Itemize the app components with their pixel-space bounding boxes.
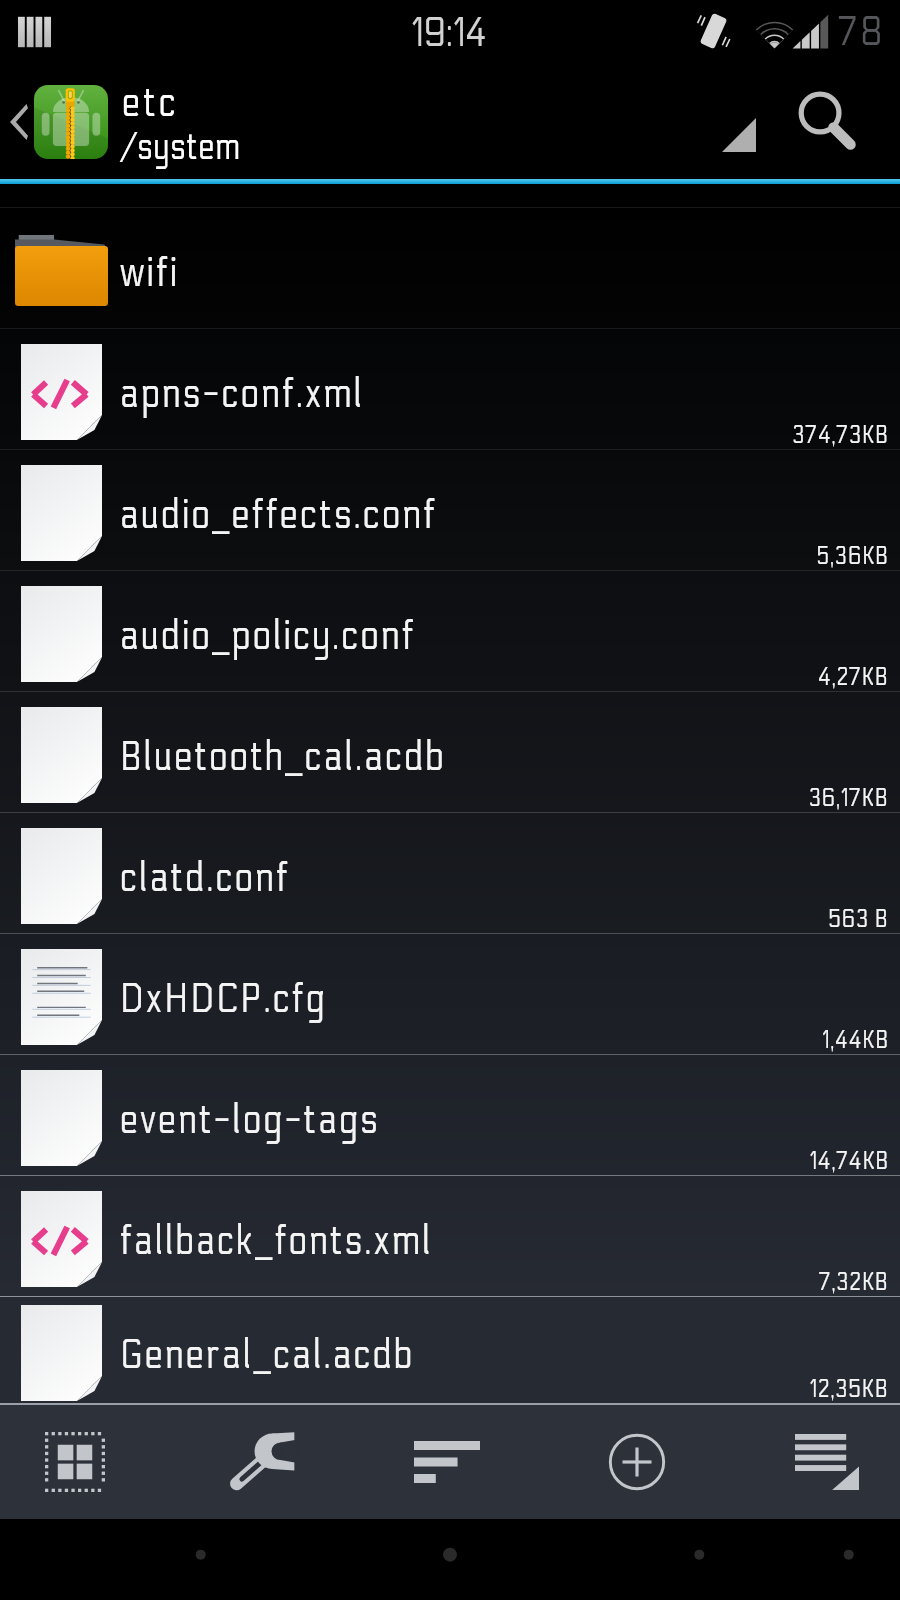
staticText: clatd.conf — [120, 853, 290, 903]
button[interactable]: New — [547, 1405, 727, 1519]
staticText: 5,36KB — [816, 541, 889, 571]
staticText: etc — [122, 78, 180, 128]
staticText: Bluetooth_cal.acdb — [120, 732, 446, 782]
button[interactable]: Sort — [357, 1405, 537, 1519]
staticText: 563 B — [828, 904, 889, 934]
staticText: 78 — [838, 7, 885, 57]
button[interactable]: audio_effects.conf — [0, 449, 900, 570]
button[interactable]: More — [737, 1405, 900, 1519]
button[interactable]: audio_policy.conf — [0, 570, 900, 691]
staticText: wifi — [120, 248, 180, 298]
button[interactable]: wifi — [0, 207, 900, 328]
staticText: /system — [121, 125, 241, 169]
staticText: 36,17KB — [809, 783, 889, 813]
staticText: event-log-tags — [120, 1095, 380, 1145]
staticText: 4,27KB — [818, 662, 889, 692]
staticText: audio_policy.conf — [120, 611, 416, 661]
button[interactable]: DxHDCP.cfg — [0, 933, 900, 1054]
button[interactable]: clatd.conf — [0, 812, 900, 933]
button[interactable]: event-log-tags — [0, 1054, 900, 1175]
staticText: fallback_fonts.xml — [120, 1216, 433, 1266]
staticText: audio_effects.conf — [120, 490, 437, 540]
staticText: 1,44KB — [822, 1025, 889, 1055]
button[interactable]: Tools — [172, 1405, 352, 1519]
button[interactable]: fallback_fonts.xml — [0, 1175, 900, 1296]
button[interactable]: Back — [0, 63, 33, 179]
staticText: 12,35KB — [809, 1374, 889, 1403]
staticText: apns-conf.xml — [120, 369, 365, 419]
staticText: 14,74KB — [809, 1146, 889, 1176]
button[interactable]: Search — [780, 63, 900, 179]
staticText: DxHDCP.cfg — [120, 974, 327, 1024]
staticText: General_cal.acdb — [120, 1330, 415, 1380]
button[interactable]: Select all — [0, 1405, 165, 1519]
button[interactable]: General_cal.acdb — [0, 1296, 900, 1403]
staticText: 374,73KB — [792, 420, 889, 450]
staticText: 7,32KB — [819, 1267, 889, 1297]
staticText: 19:14 — [411, 8, 487, 58]
button[interactable]: apns-conf.xml — [0, 328, 900, 449]
button[interactable]: Bluetooth_cal.acdb — [0, 691, 900, 812]
